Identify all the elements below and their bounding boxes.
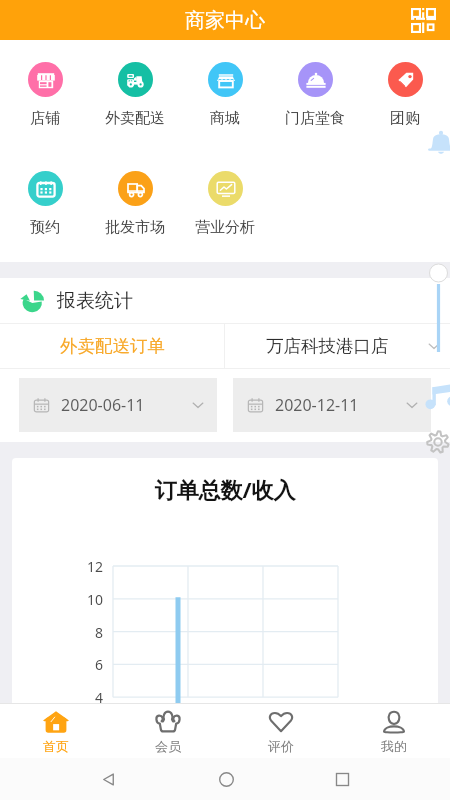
staticText: 8 [12, 623, 103, 642]
staticText: 2020-06-11 [61, 394, 145, 416]
button[interactable]: Settings [426, 430, 450, 454]
staticText: 万店科技港口店 [266, 335, 389, 357]
staticText: 商家中心 [185, 8, 265, 33]
staticText: 外卖配送 [105, 109, 165, 128]
button[interactable]: 首页 [0, 704, 112, 758]
button[interactable]: 会员 [112, 704, 224, 758]
staticText: 会员 [155, 738, 181, 754]
staticText: 团购 [390, 109, 420, 128]
staticText: 4 [12, 688, 103, 703]
button[interactable]: 门店堂食 [270, 62, 360, 128]
button[interactable]: 商城 [180, 62, 270, 128]
button[interactable]: 营业分析 [180, 171, 270, 237]
staticText: 订单总数/收入 [12, 474, 438, 504]
staticText: 报表统计 [57, 289, 133, 313]
button[interactable]: 我的 [337, 704, 450, 758]
staticText: 10 [12, 590, 103, 609]
staticText: 评价 [268, 738, 294, 754]
staticText: 我的 [381, 738, 407, 754]
button[interactable]: 团购 [360, 62, 450, 128]
button[interactable]: Scan QR code [403, 0, 443, 40]
button[interactable]: Music [427, 383, 450, 409]
button[interactable]: 批发市场 [90, 171, 180, 237]
staticText: 营业分析 [195, 218, 255, 237]
button[interactable]: 外卖配送订单 [0, 324, 224, 368]
button[interactable]: 预约 [0, 171, 90, 237]
staticText: 外卖配送订单 [60, 335, 165, 357]
staticText: 2020-12-11 [275, 394, 359, 416]
staticText: 店铺 [30, 109, 60, 128]
button[interactable]: 2020-12-11 [233, 378, 431, 432]
button[interactable]: 万店科技港口店 [225, 324, 450, 368]
button[interactable]: 店铺 [0, 62, 90, 128]
staticText: 12 [12, 557, 103, 576]
staticText: 门店堂食 [285, 109, 345, 128]
button[interactable]: 2020-06-11 [19, 378, 217, 432]
button[interactable]: 评价 [224, 704, 337, 758]
staticText: 首页 [43, 738, 69, 754]
staticText: 预约 [30, 218, 60, 237]
staticText: 批发市场 [105, 218, 165, 237]
button[interactable]: 外卖配送 [90, 62, 180, 128]
button[interactable]: Notifications [426, 128, 450, 158]
staticText: 商城 [210, 109, 240, 128]
staticText: 6 [12, 655, 103, 674]
